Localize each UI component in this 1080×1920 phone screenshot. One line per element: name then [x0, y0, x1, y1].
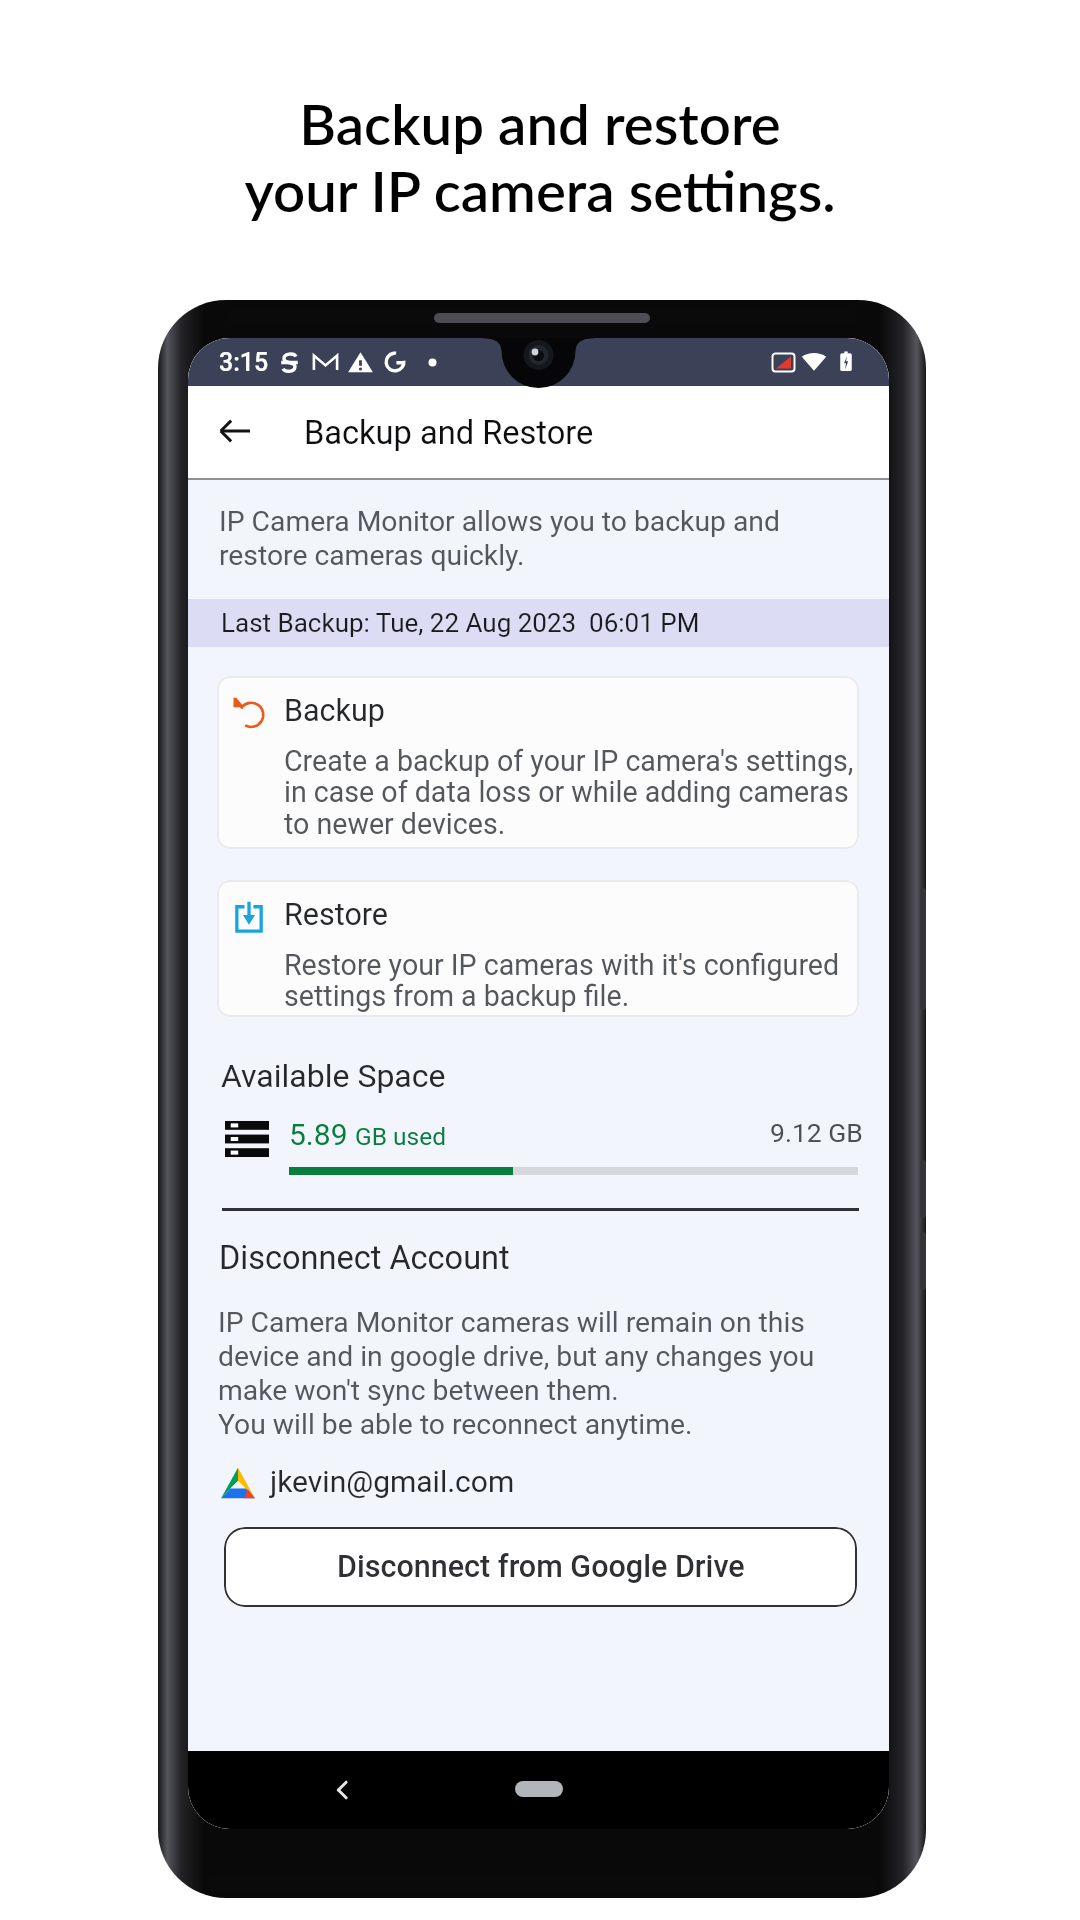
- button[interactable]: Restore: [217, 880, 859, 1017]
- button[interactable]: Back: [188, 386, 276, 479]
- staticText: Backup and Restore: [304, 414, 594, 452]
- button[interactable]: Back: [313, 1751, 371, 1829]
- staticText: 9.12 GB: [770, 1117, 863, 1148]
- staticText: Restore your IP cameras with it's config…: [284, 948, 840, 1013]
- button[interactable]: Backup: [217, 676, 859, 849]
- staticText: jkevin@gmail.com: [270, 1464, 515, 1499]
- button[interactable]: Disconnect from Google Drive: [224, 1527, 857, 1607]
- staticText: 3:15: [219, 348, 269, 377]
- staticText: Create a backup of your IP camera's sett…: [284, 744, 854, 841]
- staticText: IP Camera Monitor cameras will remain on…: [218, 1306, 815, 1440]
- staticText: Backup and restore your IP camera settin…: [244, 89, 836, 224]
- staticText: Disconnect Account: [219, 1239, 510, 1277]
- staticText: Last Backup: Tue, 22 Aug 2023 06:01 PM: [221, 608, 700, 638]
- staticText: Backup: [284, 693, 385, 729]
- staticText: 5.89: [289, 1117, 355, 1152]
- staticText: Restore: [284, 897, 389, 933]
- button[interactable]: Home: [515, 1781, 563, 1797]
- staticText: Available Space: [221, 1057, 446, 1095]
- staticText: GB used: [355, 1122, 446, 1151]
- staticText: Disconnect from Google Drive: [337, 1549, 745, 1585]
- staticText: IP Camera Monitor allows you to backup a…: [219, 505, 780, 572]
